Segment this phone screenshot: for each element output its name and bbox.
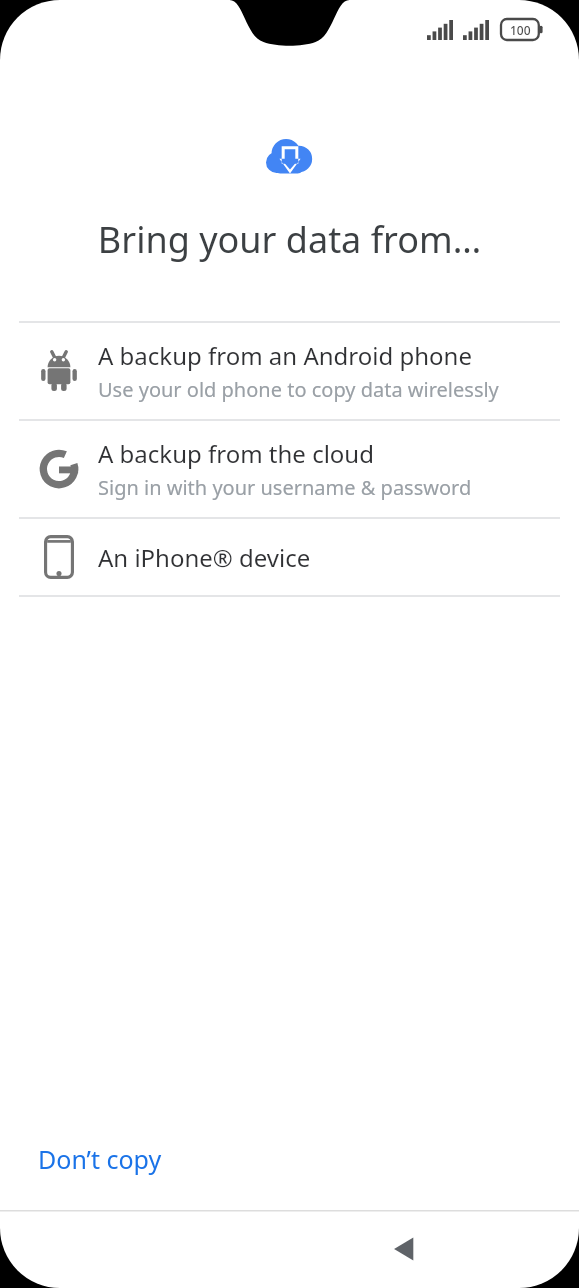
staticText: A backup from the cloud	[98, 437, 374, 470]
staticText: Sign in with your username & password	[98, 474, 472, 501]
button[interactable]: Back	[381, 1225, 429, 1273]
staticText: 100	[510, 22, 531, 38]
button[interactable]: A backup from an Android phone	[0, 323, 579, 419]
staticText: Use your old phone to copy data wireless…	[98, 376, 499, 403]
button[interactable]: A backup from the cloud	[0, 421, 579, 517]
staticText: Don’t copy	[38, 1142, 162, 1176]
staticText: Bring your data from…	[0, 215, 579, 264]
button[interactable]: An iPhone® device	[0, 519, 579, 595]
staticText: An iPhone® device	[98, 541, 311, 574]
staticText: A backup from an Android phone	[98, 339, 472, 372]
button[interactable]: Don’t copy	[24, 1132, 176, 1186]
